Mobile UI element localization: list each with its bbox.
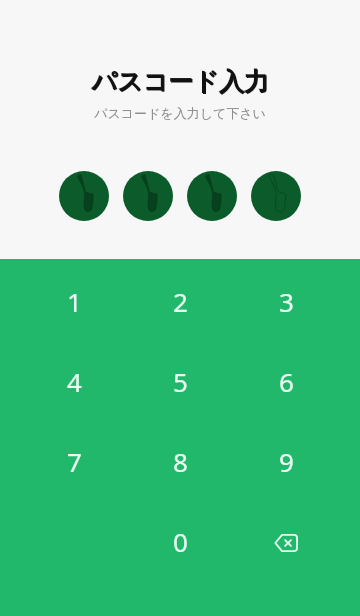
staticText: 6	[279, 364, 294, 399]
staticText: 0	[173, 524, 188, 559]
staticText: パスコード入力	[91, 66, 269, 97]
staticText: 3	[279, 284, 294, 319]
button[interactable]: 3	[233, 261, 339, 341]
button[interactable]: 2	[127, 261, 233, 341]
button[interactable]: Delete	[233, 501, 339, 581]
button[interactable]: 4	[21, 341, 127, 421]
button[interactable]: 0	[127, 501, 233, 581]
button[interactable]: 7	[21, 421, 127, 501]
button[interactable]: 9	[233, 421, 339, 501]
button[interactable]: 5	[127, 341, 233, 421]
staticText: 7	[67, 444, 82, 479]
button[interactable]: 1	[21, 261, 127, 341]
staticText: パスコード入力	[92, 67, 270, 98]
button[interactable]: 8	[127, 421, 233, 501]
staticText: 4	[67, 364, 82, 399]
staticText: パスコードを入力して下さい	[94, 105, 266, 121]
staticText: 1	[67, 284, 82, 319]
staticText: 9	[279, 444, 294, 479]
staticText: 2	[173, 284, 188, 319]
staticText: 5	[173, 364, 188, 399]
button[interactable]: 6	[233, 341, 339, 421]
staticText: 8	[173, 444, 188, 479]
